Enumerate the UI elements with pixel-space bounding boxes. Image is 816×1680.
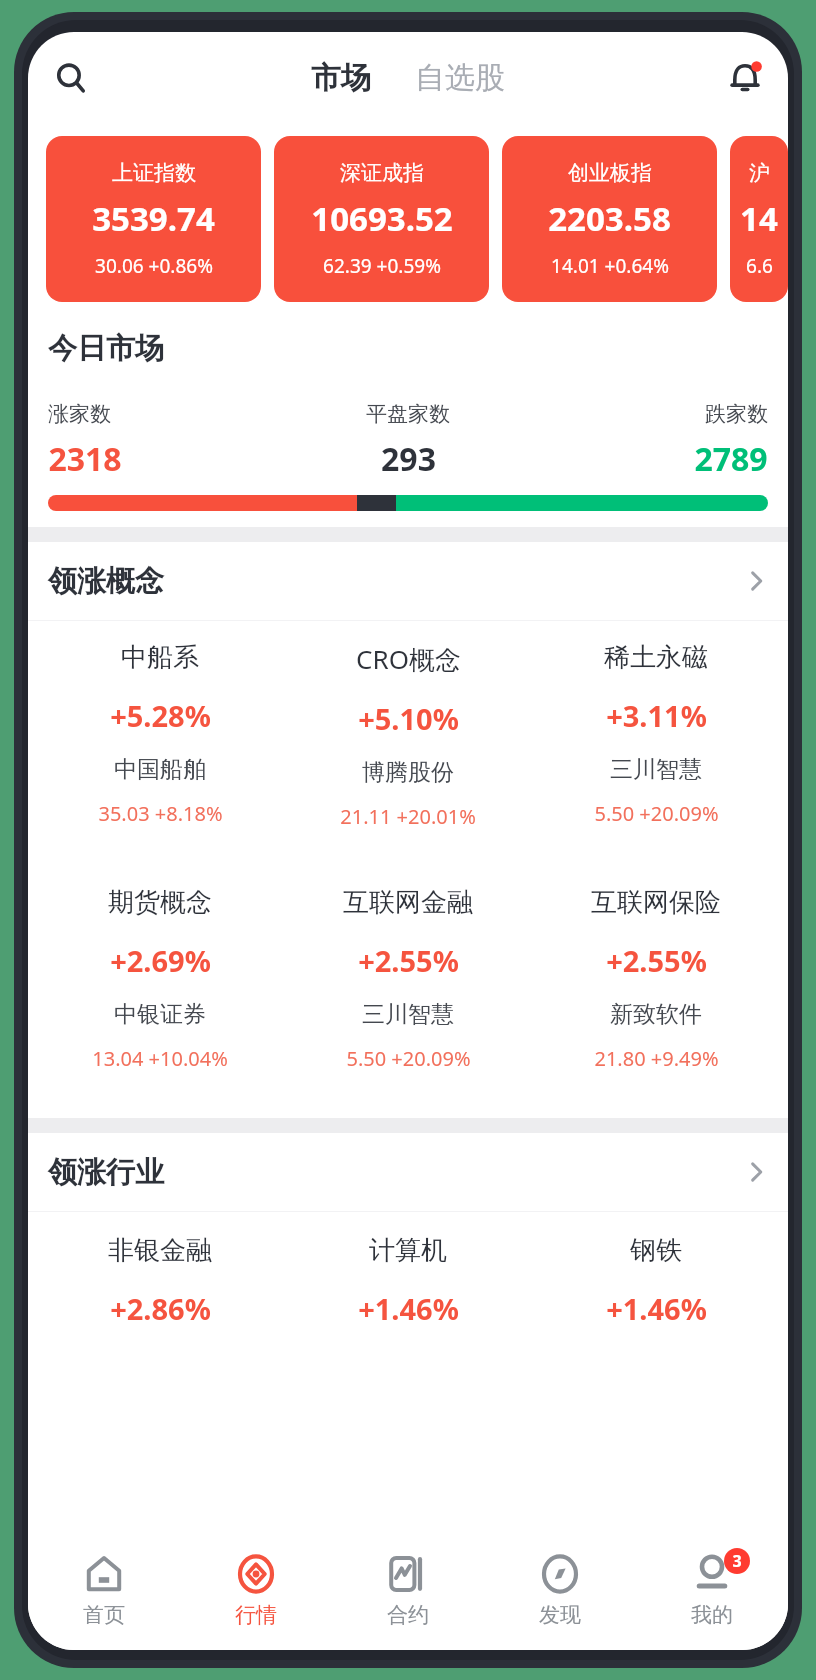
button[interactable]: 上证指数 xyxy=(46,136,261,302)
staticText: 今日市场 xyxy=(48,330,164,367)
button[interactable]: 发现 xyxy=(484,1532,636,1650)
staticText: 互联网保险 xyxy=(591,886,721,919)
button[interactable]: 首页 xyxy=(28,1532,180,1650)
button[interactable]: 领涨概念 xyxy=(28,542,788,620)
staticText: 2789 xyxy=(694,437,768,481)
button[interactable]: 合约 xyxy=(332,1532,484,1650)
staticText: 深证成指 xyxy=(340,160,424,186)
staticText: 计算机 xyxy=(369,1234,447,1267)
button[interactable]: 中船系 xyxy=(36,635,284,833)
button[interactable]: 沪 xyxy=(730,136,788,302)
staticText: 293 xyxy=(381,437,436,481)
staticText: 首页 xyxy=(83,1602,125,1628)
button[interactable]: 计算机 xyxy=(284,1234,532,1328)
staticText: 2203.58 xyxy=(548,196,671,241)
staticText: 21.11 +20.01% xyxy=(340,803,476,830)
staticText: 5.50 +20.09% xyxy=(594,800,719,827)
staticText: 中银证券 xyxy=(114,1000,206,1029)
staticText: +3.11% xyxy=(606,696,707,735)
button[interactable]: CRO概念 xyxy=(284,635,532,836)
button[interactable]: 互联网金融 xyxy=(284,880,532,1078)
staticText: 中船系 xyxy=(121,641,199,674)
staticText: 中国船舶 xyxy=(114,755,206,784)
staticText: 市场 xyxy=(311,59,371,97)
staticText: +1.46% xyxy=(606,1289,707,1328)
staticText: 合约 xyxy=(387,1602,429,1628)
button[interactable]: 稀土永磁 xyxy=(532,635,780,833)
staticText: 涨家数 xyxy=(48,401,111,427)
staticText: 10693.52 xyxy=(311,196,453,241)
staticText: 发现 xyxy=(539,1602,581,1628)
staticText: 13.04 +10.04% xyxy=(92,1045,228,1072)
button[interactable]: 自选股 xyxy=(407,53,513,103)
button[interactable]: 非银金融 xyxy=(36,1234,284,1328)
staticText: 35.03 +8.18% xyxy=(98,800,223,827)
staticText: 稀土永磁 xyxy=(604,641,708,674)
button[interactable]: 互联网保险 xyxy=(532,880,780,1078)
staticText: 新致软件 xyxy=(610,1000,702,1029)
button[interactable]: 钢铁 xyxy=(532,1234,780,1328)
staticText: 我的 xyxy=(691,1602,733,1628)
staticText: 沪 xyxy=(749,160,770,186)
staticText: 行情 xyxy=(235,1602,277,1628)
staticText: 62.39 +0.59% xyxy=(323,253,441,279)
staticText: 创业板指 xyxy=(568,160,652,186)
staticText: 领涨行业 xyxy=(48,1154,164,1191)
staticText: 上证指数 xyxy=(112,160,196,186)
staticText: 博腾股份 xyxy=(362,758,454,787)
staticText: 跌家数 xyxy=(705,401,768,427)
staticText: 三川智慧 xyxy=(362,1000,454,1029)
button[interactable]: 市场 xyxy=(303,53,379,103)
staticText: 三川智慧 xyxy=(610,755,702,784)
button[interactable]: Search xyxy=(44,51,98,105)
button[interactable]: 创业板指 xyxy=(502,136,717,302)
staticText: 5.50 +20.09% xyxy=(346,1045,471,1072)
staticText: 14.01 +0.64% xyxy=(551,253,669,279)
staticText: +2.69% xyxy=(110,941,211,980)
staticText: 互联网金融 xyxy=(343,886,473,919)
button[interactable]: 深证成指 xyxy=(274,136,489,302)
button[interactable]: 领涨行业 xyxy=(28,1133,788,1211)
staticText: 6.6 xyxy=(746,253,773,279)
staticText: 21.80 +9.49% xyxy=(594,1045,719,1072)
button[interactable]: 3 xyxy=(636,1532,788,1650)
button[interactable]: Notifications xyxy=(718,51,772,105)
staticText: 领涨概念 xyxy=(48,563,164,600)
staticText: +5.10% xyxy=(358,699,459,738)
staticText: 平盘家数 xyxy=(366,401,450,427)
button[interactable]: 行情 xyxy=(180,1532,332,1650)
staticText: 3 xyxy=(732,1550,742,1572)
staticText: 14 xyxy=(740,196,778,241)
staticText: 非银金融 xyxy=(108,1234,212,1267)
staticText: 期货概念 xyxy=(108,886,212,919)
staticText: +1.46% xyxy=(358,1289,459,1328)
staticText: +2.55% xyxy=(358,941,459,980)
staticText: +2.86% xyxy=(110,1289,211,1328)
staticText: 钢铁 xyxy=(630,1234,682,1267)
staticText: 2318 xyxy=(48,437,122,481)
staticText: 30.06 +0.86% xyxy=(95,253,213,279)
staticText: +5.28% xyxy=(110,696,211,735)
staticText: 3539.74 xyxy=(92,196,215,241)
staticText: 自选股 xyxy=(415,59,505,97)
staticText: CRO概念 xyxy=(356,641,461,677)
staticText: +2.55% xyxy=(606,941,707,980)
button[interactable]: 期货概念 xyxy=(36,880,284,1078)
